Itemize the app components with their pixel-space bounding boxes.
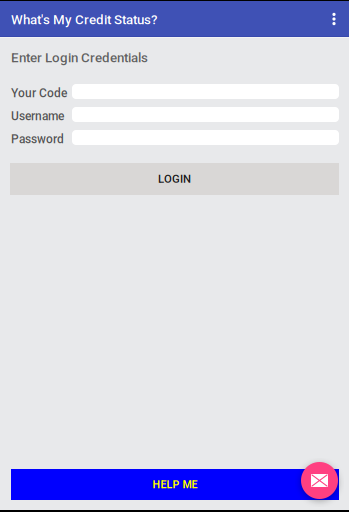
staticText: Password: [11, 132, 64, 146]
staticText: HELP ME: [152, 478, 197, 491]
button[interactable]: LOGIN: [10, 163, 339, 195]
staticText: Your Code: [11, 86, 67, 100]
button[interactable]: More options: [320, 1, 348, 37]
button[interactable]: Contact support: [301, 462, 338, 499]
staticText: What's My Credit Status?: [11, 12, 157, 28]
staticText: Username: [11, 109, 64, 123]
staticText: LOGIN: [158, 172, 191, 186]
button[interactable]: HELP ME: [11, 469, 339, 500]
staticText: Enter Login Credentials: [11, 50, 148, 66]
